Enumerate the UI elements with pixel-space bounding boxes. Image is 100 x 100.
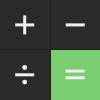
button[interactable]: Equals	[51, 50, 100, 100]
button[interactable]: Add	[0, 0, 50, 49]
button[interactable]: Divide	[0, 50, 50, 100]
button[interactable]: Subtract	[51, 0, 100, 49]
